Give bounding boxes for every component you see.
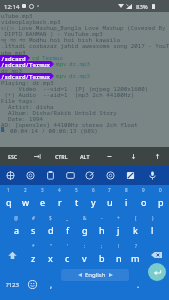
staticText: '	[67, 243, 69, 249]
staticText: f	[66, 224, 70, 236]
button[interactable]: 8	[118, 185, 135, 213]
staticText: মধু শত শত Modhu hoi hoi bish kawaila	[1, 36, 121, 44]
button[interactable]: 3	[34, 185, 51, 213]
staticText: 6	[92, 187, 95, 193]
staticText: 83%	[136, 3, 148, 11]
button[interactable]: Backspace	[144, 241, 169, 269]
staticText: o	[141, 196, 147, 208]
staticText: /sdcard/Termux	[1, 61, 51, 67]
staticText: 2	[24, 187, 27, 193]
staticText: 4	[58, 187, 61, 193]
button[interactable]: )	[144, 213, 161, 241]
staticText: DIPTO RAHMAN ) - YouTube.mp3	[1, 30, 103, 38]
button[interactable]: Sticker	[80, 167, 98, 184]
button[interactable]: 9	[135, 185, 152, 213]
staticText: ?	[135, 243, 137, 249]
staticText: v	[82, 252, 87, 264]
staticText: Playing: dr.mp3	[1, 79, 54, 87]
button[interactable]: Voice input	[143, 167, 161, 184]
button[interactable]: @	[8, 213, 25, 241]
staticText: m	[131, 252, 140, 264]
button[interactable]: '	[59, 241, 76, 269]
staticText: n	[116, 252, 122, 264]
button[interactable]: _	[59, 213, 76, 241]
staticText: dr.mp3	[69, 60, 91, 68]
staticText: h	[99, 224, 105, 236]
staticText: d	[48, 224, 54, 236]
staticText: /sdcard/Termux	[1, 73, 51, 79]
button[interactable]: ,	[42, 269, 60, 300]
staticText: mpv	[56, 60, 67, 68]
staticText: Termux	[42, 54, 64, 62]
staticText: y	[91, 196, 96, 208]
button[interactable]: 6	[85, 185, 102, 213]
staticText: #	[32, 215, 35, 221]
staticText: @	[14, 215, 19, 221]
staticText: s	[31, 224, 36, 236]
button[interactable]: ALT	[73, 147, 97, 166]
button[interactable]: Shift	[0, 241, 25, 269]
button[interactable]: #	[25, 213, 42, 241]
button[interactable]: Settings	[101, 167, 119, 184]
button[interactable]: Minus	[97, 147, 121, 166]
button[interactable]: :	[76, 241, 93, 269]
staticText: :	[84, 243, 86, 249]
staticText: /sdcard	[1, 55, 26, 61]
button[interactable]: ?123	[0, 269, 24, 300]
button[interactable]: 2	[17, 185, 34, 213]
button[interactable]: 4	[51, 185, 68, 213]
staticText: mpv	[56, 72, 67, 80]
button[interactable]: Enter	[148, 263, 166, 281]
staticText: 9	[142, 187, 145, 193]
button[interactable]: GIF	[61, 167, 79, 184]
button[interactable]: !	[110, 241, 127, 269]
button[interactable]: Emoji	[21, 167, 39, 184]
staticText: r	[58, 196, 62, 208]
button[interactable]: $	[42, 213, 59, 241]
staticText: dr.mp3	[69, 72, 91, 80]
staticText: 8	[125, 187, 128, 193]
button[interactable]: English	[61, 269, 129, 281]
staticText: cd	[32, 54, 40, 62]
button[interactable]: "	[42, 241, 59, 269]
button[interactable]: CTRL	[49, 147, 73, 166]
button[interactable]: *	[25, 241, 42, 269]
staticText: .ittadi coxbazar jahid aweasome song 201…	[1, 42, 169, 50]
button[interactable]: Clipboard	[41, 167, 59, 184]
staticText: 5	[75, 187, 78, 193]
staticText: (+) Audio --aid=1 (mp3 2ch 44100Hz)	[1, 91, 135, 99]
button[interactable]: ;	[93, 241, 110, 269]
button[interactable]: 5	[68, 185, 85, 213]
staticText: 1	[7, 187, 10, 193]
staticText: : 00:04:14 / 00:06:13 (68%)	[3, 127, 98, 135]
button[interactable]: Down	[121, 147, 145, 166]
staticText: 3	[41, 187, 44, 193]
staticText: e	[40, 196, 46, 208]
button[interactable]: Up	[145, 147, 169, 166]
staticText: *	[32, 243, 35, 249]
staticText: _	[66, 215, 69, 221]
button[interactable]: 1	[0, 185, 17, 213]
staticText: b	[99, 252, 105, 264]
button[interactable]: -	[93, 213, 110, 241]
button[interactable]: ESC	[0, 147, 25, 166]
button[interactable]: &	[76, 213, 93, 241]
staticText: 12:14	[4, 3, 20, 11]
button[interactable]: (	[127, 213, 144, 241]
button[interactable]: .	[130, 269, 146, 300]
button[interactable]: +	[110, 213, 127, 241]
button[interactable]: ?	[127, 241, 144, 269]
button[interactable]: Translate	[1, 167, 19, 184]
button[interactable]: Tab	[25, 147, 49, 166]
staticText: ;	[101, 243, 103, 249]
button[interactable]: 7	[101, 185, 118, 213]
button[interactable]: 0	[152, 185, 169, 213]
staticText: Album: Disha/Rakib Untold Story	[1, 109, 117, 117]
button[interactable]: Emoji	[23, 269, 41, 300]
button[interactable]: Screenshot	[121, 167, 139, 184]
staticText: Date: 1994	[1, 115, 44, 123]
staticText: AO: [opensles] 44100Hz stereo 2ch float	[1, 121, 138, 129]
staticText: -	[101, 215, 103, 221]
staticText: File tags:	[1, 97, 37, 105]
staticText: .	[137, 279, 140, 290]
